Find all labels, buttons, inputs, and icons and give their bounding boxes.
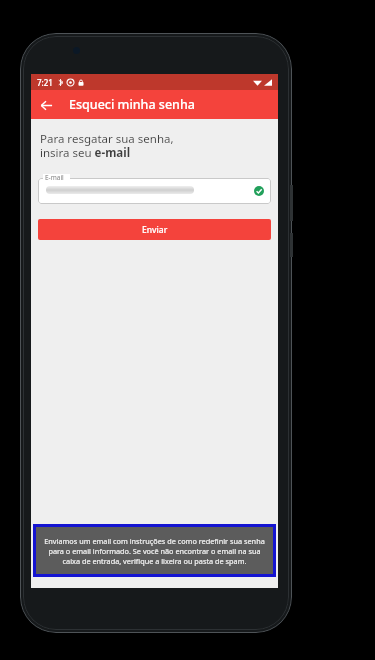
button[interactable]: Enviamos um email com instruções de como… xyxy=(36,527,273,574)
staticText: Para resgatar sua senha, insira seu e-ma… xyxy=(40,131,174,161)
button[interactable] xyxy=(38,178,271,204)
staticText: Esqueci minha senha xyxy=(69,96,195,113)
staticText: E-mail xyxy=(45,173,64,182)
staticText: Enviamos um email com instruções de como… xyxy=(40,536,269,566)
staticText: 7:21 xyxy=(37,77,53,88)
staticText: Enviar xyxy=(142,224,168,236)
button[interactable]: Voltar xyxy=(34,93,58,117)
button[interactable]: Enviar xyxy=(38,219,271,240)
